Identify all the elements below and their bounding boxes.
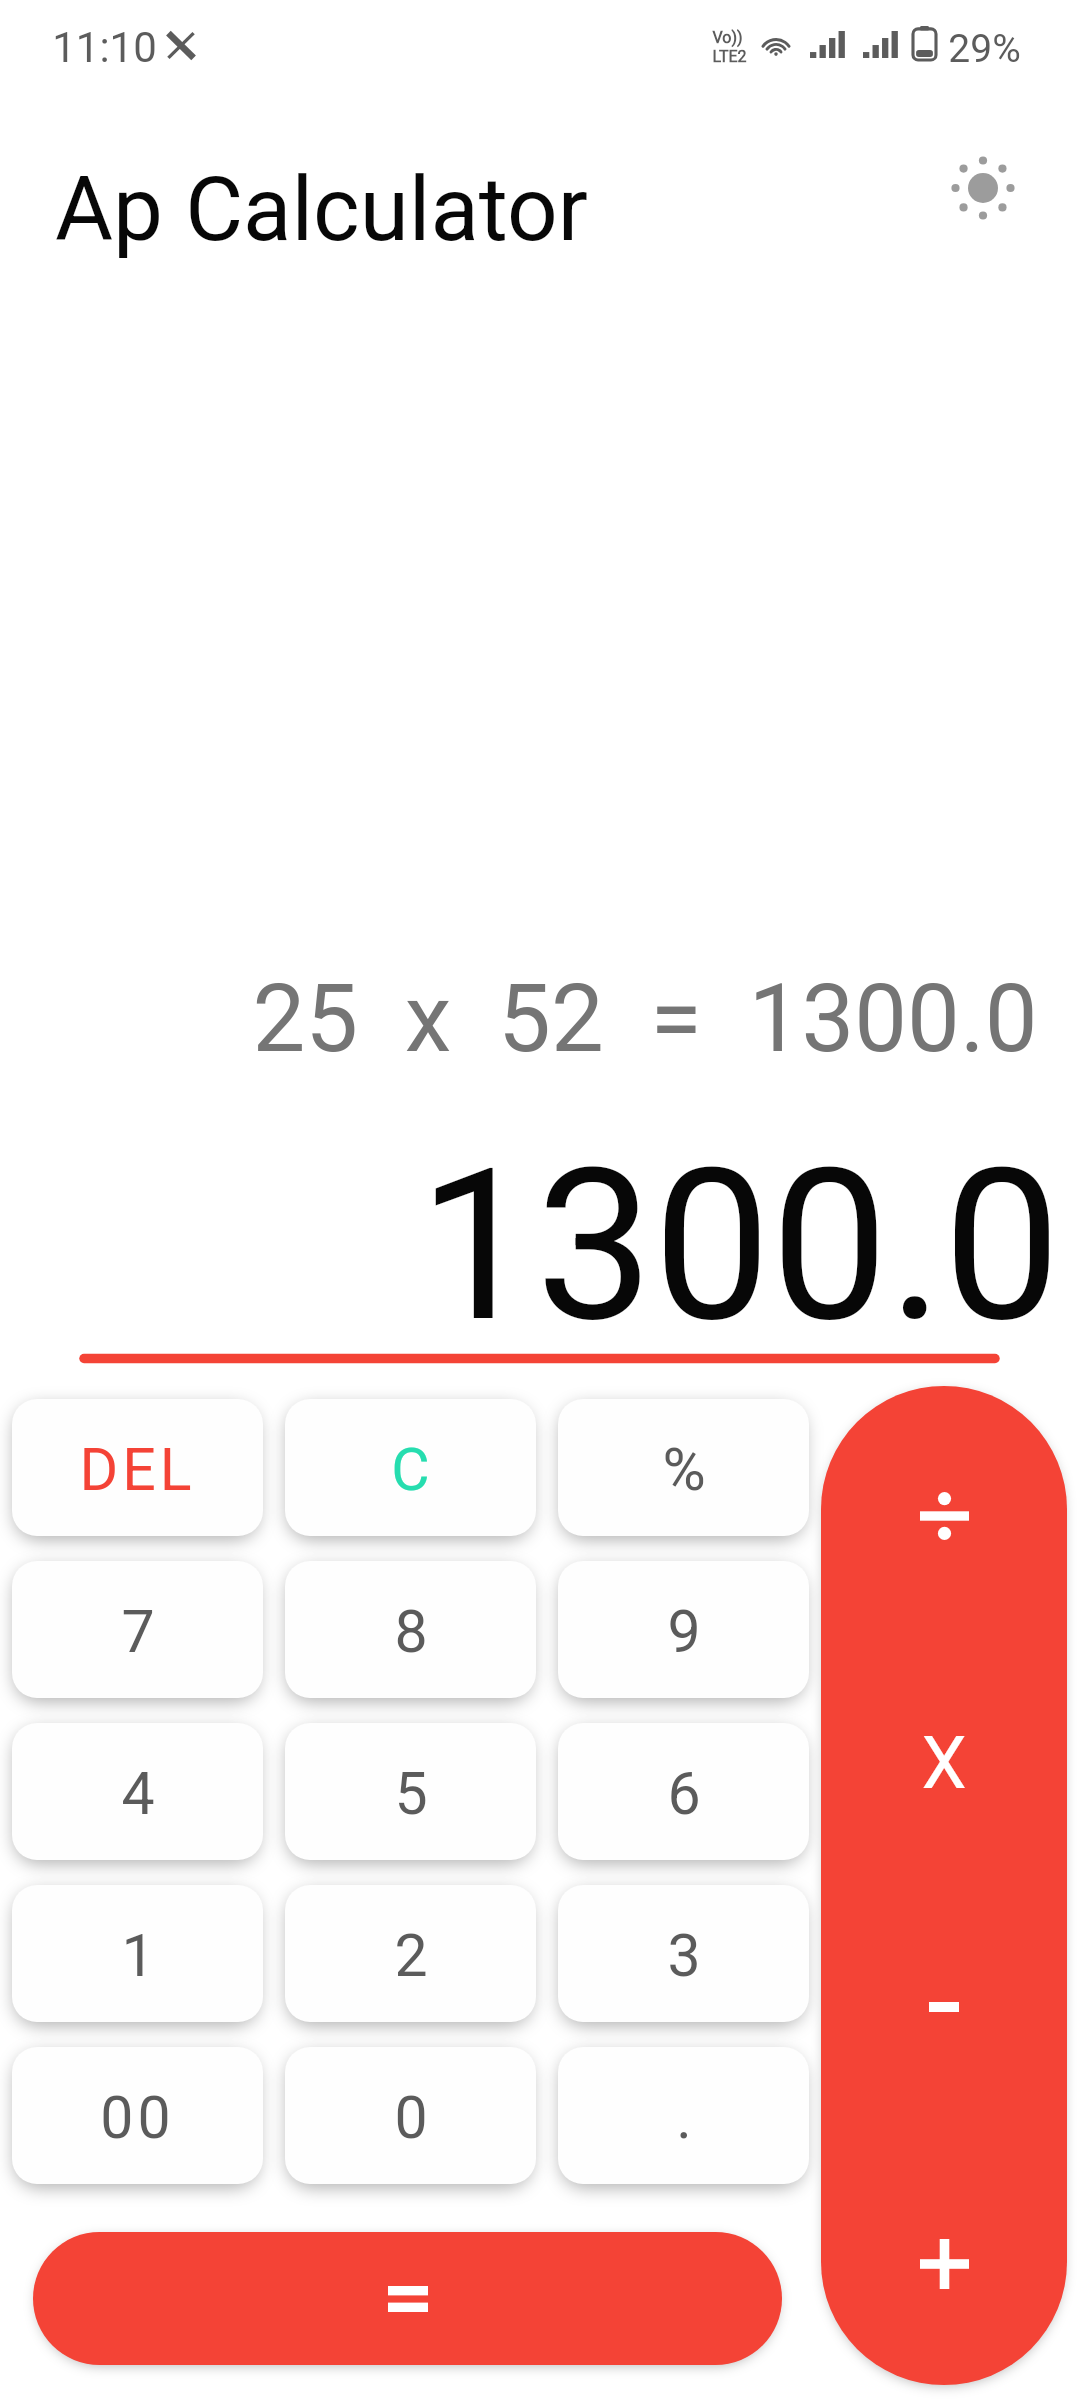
button[interactable]: 0 xyxy=(285,2047,536,2184)
staticText: 6 xyxy=(667,1759,701,1828)
button[interactable]: 4 xyxy=(12,1723,263,1860)
button[interactable]: 8 xyxy=(285,1561,536,1698)
button[interactable]: DEL xyxy=(12,1399,263,1536)
staticText: 8 xyxy=(394,1597,428,1666)
staticText: 5 xyxy=(394,1759,428,1828)
staticText: 4 xyxy=(121,1759,155,1828)
button[interactable]: 3 xyxy=(558,1885,809,2022)
button[interactable]: C xyxy=(285,1399,536,1536)
staticText: DEL xyxy=(79,1435,196,1504)
staticText: 9 xyxy=(667,1597,701,1666)
button[interactable]: 9 xyxy=(558,1561,809,1698)
button[interactable]: Subtract xyxy=(821,1882,1067,2132)
staticText: C xyxy=(391,1435,430,1504)
staticText: X xyxy=(921,1721,967,1805)
staticText: 29% xyxy=(948,26,1021,72)
button[interactable]: Multiply xyxy=(821,1636,1067,1886)
button[interactable]: % xyxy=(558,1399,809,1536)
staticText: 1300.0 xyxy=(418,1124,1061,1369)
button[interactable]: 7 xyxy=(12,1561,263,1698)
staticText: LTE2 xyxy=(712,47,747,66)
button[interactable]: 2 xyxy=(285,1885,536,2022)
button[interactable]: 1 xyxy=(12,1885,263,2022)
button[interactable]: 5 xyxy=(285,1723,536,1860)
button[interactable]: Equals xyxy=(33,2232,782,2365)
staticText: 25 x 52 = 1300.0 xyxy=(252,964,1038,1074)
staticText: Vo)) xyxy=(712,28,743,47)
staticText: 11:10 xyxy=(52,23,157,72)
other: X app xyxy=(166,31,196,60)
staticText: % xyxy=(662,1435,706,1504)
button[interactable]: Divide xyxy=(821,1391,1067,1641)
staticText: 00 xyxy=(100,2083,175,2152)
button[interactable]: 6 xyxy=(558,1723,809,1860)
button[interactable]: Toggle theme xyxy=(935,140,1030,235)
staticText: 2 xyxy=(394,1921,428,1990)
button[interactable]: Add xyxy=(821,2139,1067,2385)
button[interactable]: 00 xyxy=(12,2047,263,2184)
staticText: 0 xyxy=(394,2083,428,2152)
staticText: 3 xyxy=(667,1921,701,1990)
staticText: 1 xyxy=(121,1921,155,1990)
staticText: 7 xyxy=(121,1597,155,1666)
staticText: Ap Calculator xyxy=(55,157,588,261)
staticText: . xyxy=(676,2083,692,2152)
button[interactable]: . xyxy=(558,2047,809,2184)
